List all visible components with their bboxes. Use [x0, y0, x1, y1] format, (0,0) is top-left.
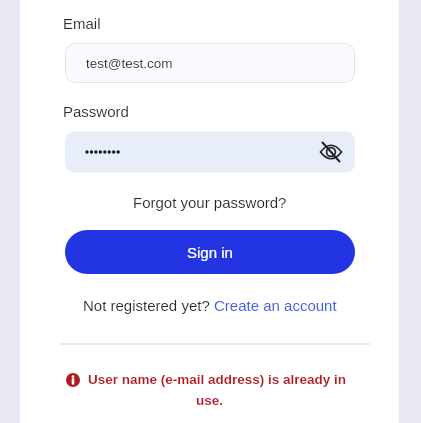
- button[interactable]: [320, 141, 342, 163]
- staticText: User name (e-mail address) is already in: [88, 372, 347, 387]
- staticText: Forgot your password?: [133, 194, 287, 211]
- staticText: test@test.com: [86, 56, 173, 71]
- button[interactable]: Forgot your password?: [20, 194, 399, 211]
- staticText: Sign in: [187, 244, 233, 261]
- button[interactable]: test@test.com: [65, 43, 355, 83]
- staticText: Email: [63, 15, 101, 32]
- button[interactable]: Create an account: [214, 297, 337, 314]
- staticText: use.: [196, 393, 224, 408]
- button[interactable]: Sign in: [65, 230, 355, 274]
- staticText: Password: [63, 103, 129, 120]
- staticText: Not registered yet?: [83, 297, 214, 314]
- button[interactable]: [65, 131, 355, 173]
